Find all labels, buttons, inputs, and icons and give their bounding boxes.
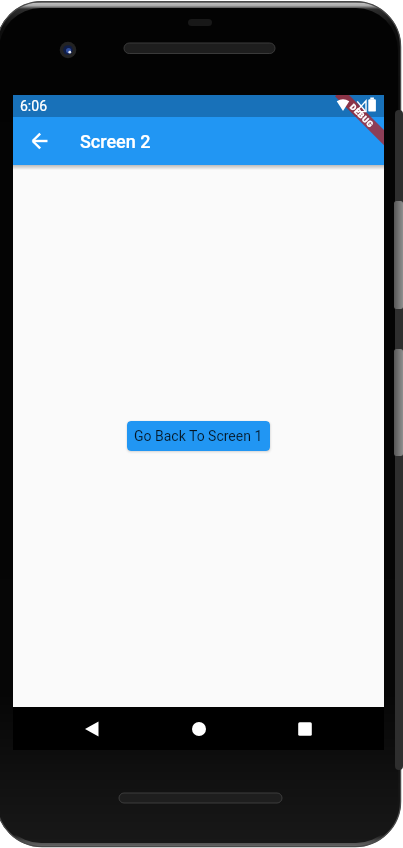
button[interactable]: Go Back To Screen 1 bbox=[127, 421, 270, 451]
button[interactable] bbox=[175, 707, 223, 750]
button[interactable] bbox=[68, 707, 116, 750]
button[interactable] bbox=[13, 117, 67, 165]
staticText: 6:06 bbox=[20, 98, 47, 114]
staticText: Screen 2 bbox=[80, 131, 151, 152]
button[interactable] bbox=[281, 707, 329, 750]
staticText: Go Back To Screen 1 bbox=[134, 428, 263, 444]
staticText: DEBUG bbox=[348, 102, 376, 130]
